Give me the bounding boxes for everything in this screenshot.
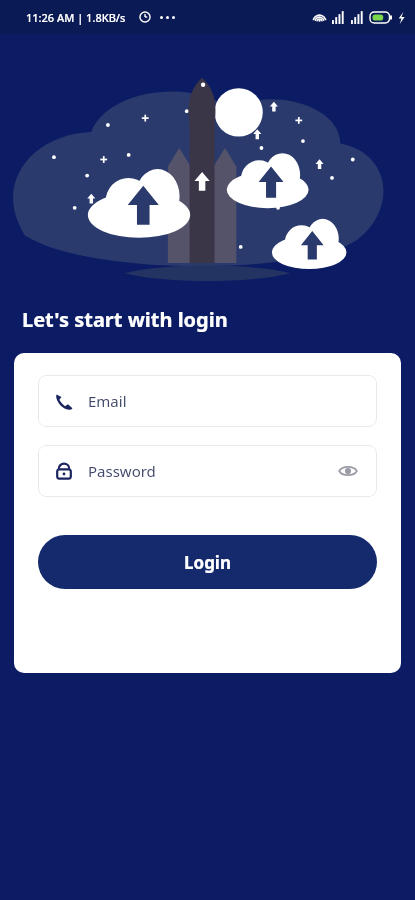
button[interactable]: Show password xyxy=(335,458,361,484)
staticText: Let's start with login xyxy=(22,306,228,333)
button[interactable]: Login xyxy=(38,535,377,589)
button[interactable]: Password xyxy=(38,445,377,497)
staticText: 11:26 AM | 1.8KB/s xyxy=(26,10,126,25)
staticText: Password xyxy=(88,461,156,481)
staticText: Login xyxy=(184,551,232,574)
staticText: Email xyxy=(88,391,127,411)
button[interactable]: Email xyxy=(38,375,377,427)
